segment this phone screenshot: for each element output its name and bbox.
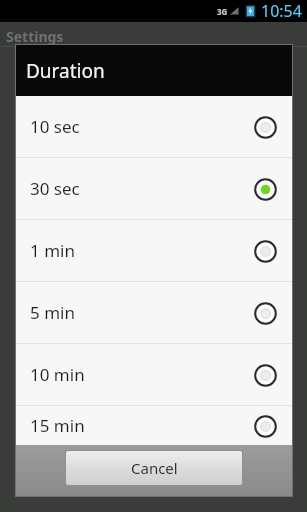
button[interactable]: 1 min [16, 220, 292, 281]
button[interactable]: 15 min [16, 406, 292, 445]
staticText: Cancel [131, 458, 178, 478]
staticText: 5 min [30, 301, 75, 324]
button[interactable]: Option [252, 300, 278, 326]
button[interactable]: Option [252, 362, 278, 388]
staticText: 3G [217, 6, 228, 17]
staticText: 1 min [30, 239, 75, 262]
staticText: 10:54 [261, 0, 302, 22]
button[interactable]: Option [252, 413, 278, 439]
button[interactable]: 10 sec [16, 96, 292, 157]
staticText: 10 sec [30, 115, 80, 138]
button[interactable]: 30 sec [16, 158, 292, 219]
staticText: 30 sec [30, 177, 80, 200]
button[interactable]: Option [252, 114, 278, 140]
button[interactable]: Selected option [252, 176, 278, 202]
button[interactable]: Option [252, 238, 278, 264]
staticText: 15 min [30, 414, 85, 437]
staticText: Duration [26, 58, 105, 84]
staticText: Settings [6, 27, 64, 46]
button[interactable]: 5 min [16, 282, 292, 343]
staticText: 10 min [30, 363, 85, 386]
button[interactable]: Cancel [66, 451, 242, 485]
button[interactable]: 10 min [16, 344, 292, 405]
